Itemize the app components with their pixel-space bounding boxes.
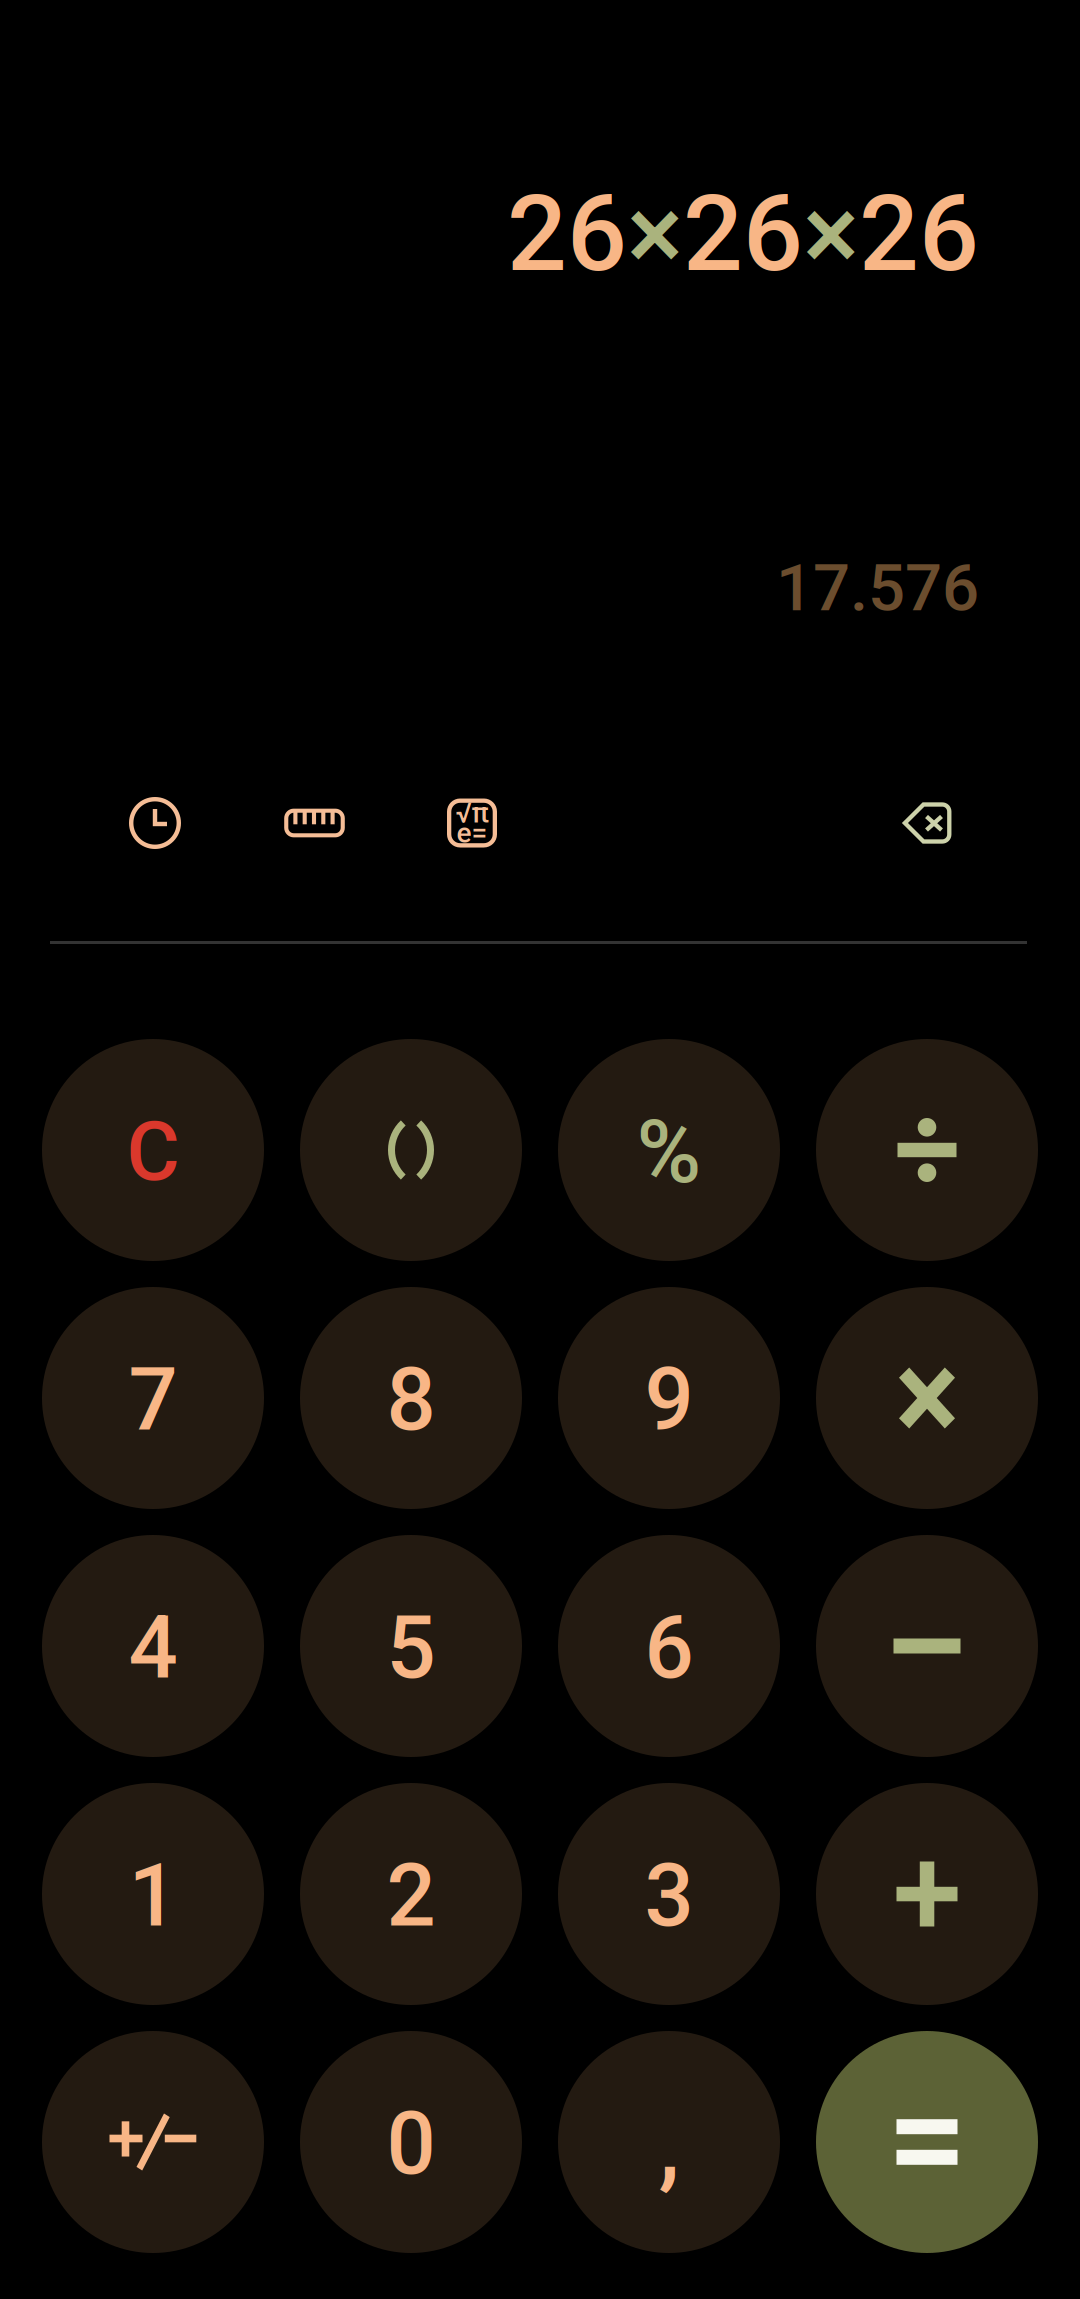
button[interactable]: Clear xyxy=(42,1039,264,1261)
staticText: 8 xyxy=(386,1349,435,1451)
button[interactable]: Plus xyxy=(816,1783,1038,2005)
staticText: , xyxy=(658,2089,679,2201)
staticText: 4 xyxy=(128,1597,177,1699)
staticText: 3 xyxy=(644,1845,693,1947)
button[interactable]: 8 xyxy=(300,1287,522,1509)
staticText: 26 xyxy=(859,172,979,296)
staticText: 6 xyxy=(644,1597,693,1699)
staticText: 26 xyxy=(683,172,803,296)
button[interactable]: 5 xyxy=(300,1535,522,1757)
button[interactable]: Scientific functions xyxy=(439,790,505,856)
staticText: C xyxy=(126,1104,179,1200)
staticText: √π xyxy=(455,797,488,829)
button[interactable]: 7 xyxy=(42,1287,264,1509)
staticText: 17.576 xyxy=(776,550,979,626)
button[interactable]: Multiply xyxy=(816,1287,1038,1509)
button[interactable]: Percent xyxy=(558,1039,780,1261)
staticText: 1 xyxy=(128,1845,177,1947)
staticText: 0 xyxy=(386,2093,435,2195)
button[interactable]: Plus minus xyxy=(42,2031,264,2253)
button[interactable]: 4 xyxy=(42,1535,264,1757)
button[interactable]: 6 xyxy=(558,1535,780,1757)
staticText: 7 xyxy=(128,1349,177,1451)
button[interactable]: History xyxy=(122,790,188,856)
button[interactable]: 2 xyxy=(300,1783,522,2005)
staticText: 26 xyxy=(507,172,627,296)
button[interactable]: 9 xyxy=(558,1287,780,1509)
button[interactable]: Divide xyxy=(816,1039,1038,1261)
staticText: × xyxy=(803,172,859,296)
button[interactable]: Minus xyxy=(816,1535,1038,1757)
button[interactable]: Backspace xyxy=(899,790,965,856)
staticText: × xyxy=(627,172,683,296)
button[interactable]: Equals xyxy=(816,2031,1038,2253)
staticText: e= xyxy=(456,817,487,849)
staticText: 5 xyxy=(386,1597,435,1699)
button[interactable]: Unit converter xyxy=(281,790,347,856)
staticText: 2 xyxy=(386,1845,435,1947)
button[interactable]: 0 xyxy=(300,2031,522,2253)
staticText: 9 xyxy=(644,1349,693,1451)
button[interactable]: Parentheses xyxy=(300,1039,522,1261)
button[interactable]: 1 xyxy=(42,1783,264,2005)
button[interactable]: 3 xyxy=(558,1783,780,2005)
button[interactable]: Decimal separator xyxy=(558,2031,780,2253)
staticText: % xyxy=(636,1100,701,1203)
